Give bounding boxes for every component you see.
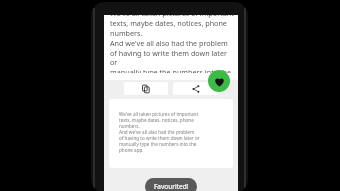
staticText: And we've all also had the problem [110, 38, 228, 48]
staticText: We've all taken pictures of important [110, 8, 234, 18]
button[interactable]: Favourite [208, 70, 230, 92]
staticText: Favourited! [154, 182, 189, 191]
staticText: We've all taken pictures of important [119, 111, 199, 117]
staticText: manually type the numbers into the [110, 67, 232, 73]
staticText: manually type the numbers into the [119, 141, 197, 147]
staticText: texts, maybe dates, notices, phone [110, 18, 227, 28]
button[interactable]: Favourited! [145, 178, 197, 191]
button[interactable]: We've all taken pictures of important [109, 99, 233, 168]
staticText: phone app. [119, 147, 144, 153]
button[interactable]: Copy [124, 82, 168, 95]
staticText: of having to write them down later or [110, 48, 234, 67]
staticText: texts, maybe dates, notices, phone [119, 117, 194, 123]
button[interactable]: Share [173, 82, 218, 95]
staticText: numbers. [119, 123, 140, 129]
staticText: numbers. [110, 28, 143, 38]
staticText: And we've all also had the problem [119, 129, 195, 135]
staticText: of having to write them down later or [119, 135, 200, 141]
